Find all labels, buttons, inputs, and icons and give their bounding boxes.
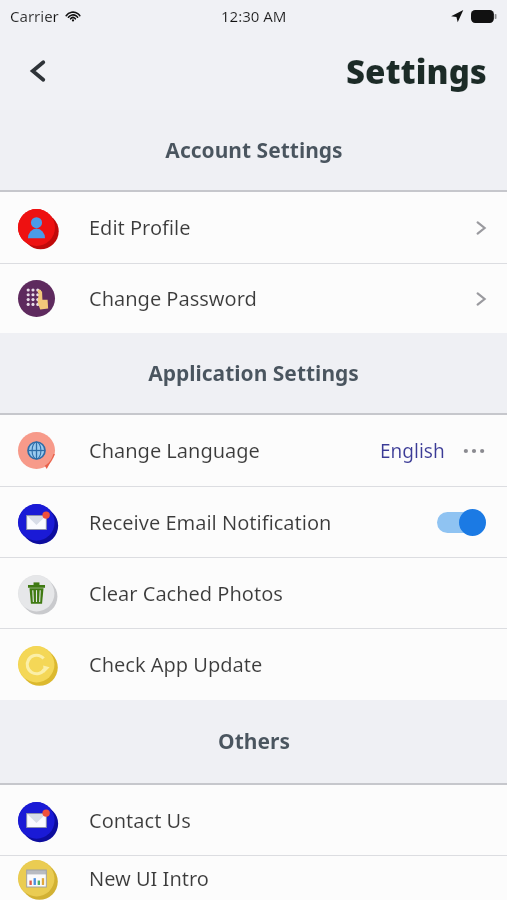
staticText: 12:30 AM (221, 6, 287, 26)
button[interactable]: Back (16, 49, 60, 93)
button[interactable]: Receive Email Notification (0, 487, 507, 557)
staticText: Check App Update (89, 651, 263, 678)
button[interactable]: Change Language (0, 415, 507, 486)
button[interactable]: Edit Profile (0, 192, 507, 263)
staticText: Clear Cached Photos (89, 580, 283, 607)
staticText: Others (218, 727, 290, 756)
staticText: English (380, 438, 445, 464)
button[interactable]: Receive Email Notification toggle (437, 508, 487, 536)
button[interactable]: Clear Cached Photos (0, 558, 507, 628)
staticText: Edit Profile (89, 214, 191, 241)
staticText: Carrier (10, 6, 59, 26)
staticText: Contact Us (89, 807, 191, 834)
staticText: New UI Intro (89, 865, 209, 892)
button[interactable]: Contact Us (0, 785, 507, 855)
button[interactable]: More options (461, 438, 487, 464)
staticText: Receive Email Notification (89, 509, 332, 536)
staticText: Application Settings (148, 359, 359, 388)
staticText: Account Settings (165, 136, 343, 165)
button[interactable]: Check App Update (0, 629, 507, 700)
staticText: Change Language (89, 437, 260, 464)
button[interactable]: Change Password (0, 264, 507, 333)
button[interactable]: New UI Intro (0, 856, 507, 900)
staticText: Change Password (89, 285, 257, 312)
staticText: Settings (346, 49, 487, 94)
